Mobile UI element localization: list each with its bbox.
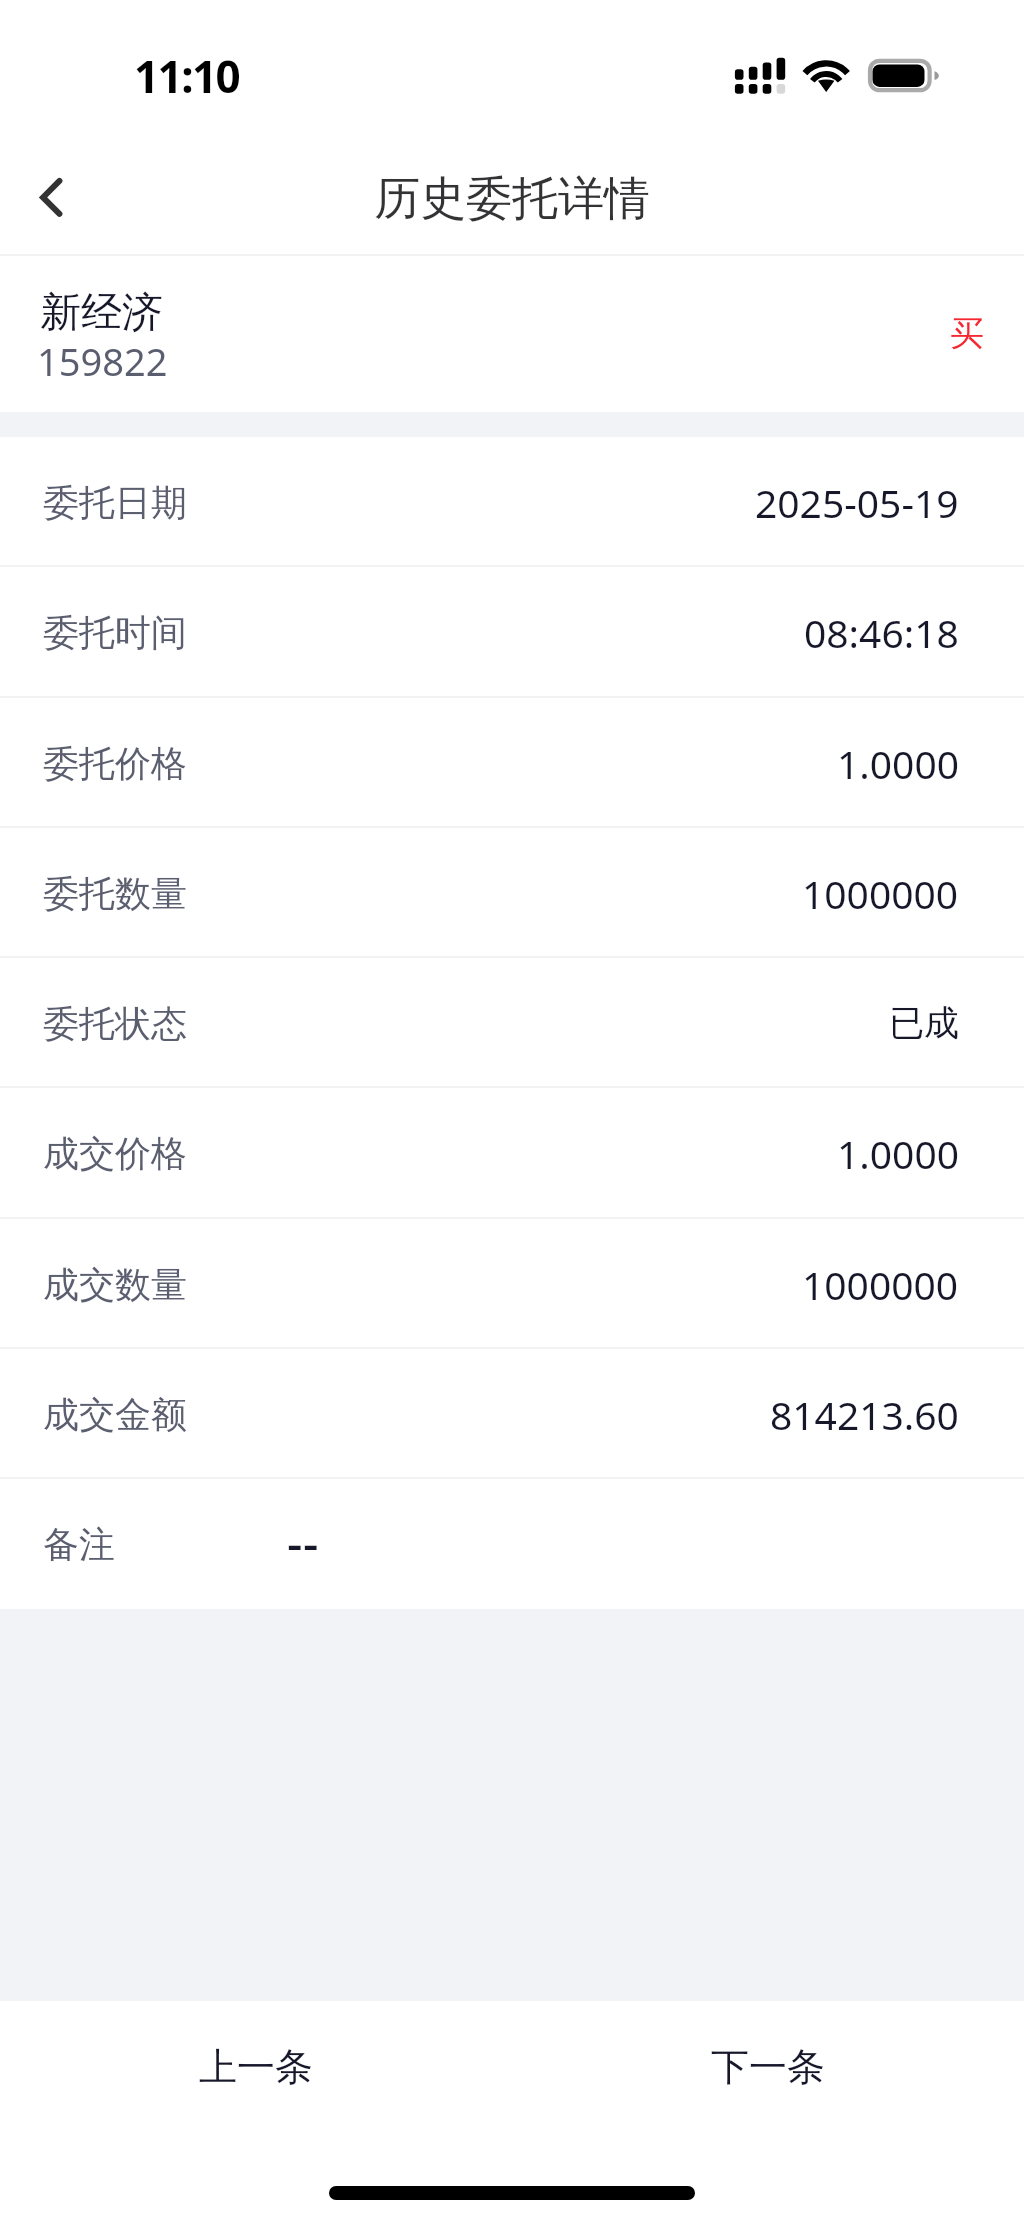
staticText: 1.0000 bbox=[837, 737, 959, 790]
button[interactable]: 成交数量 bbox=[0, 1219, 1024, 1349]
staticText: 成交金额 bbox=[43, 1392, 187, 1437]
button[interactable]: Back bbox=[0, 137, 112, 249]
staticText: 下一条 bbox=[711, 2043, 825, 2091]
staticText: 159822 bbox=[37, 335, 168, 387]
button[interactable]: 委托状态 bbox=[0, 958, 1024, 1088]
staticText: 委托价格 bbox=[43, 741, 187, 786]
staticText: 历史委托详情 bbox=[374, 170, 650, 228]
button[interactable]: 委托时间 bbox=[0, 567, 1024, 698]
staticText: 08:46:18 bbox=[804, 606, 959, 659]
staticText: 委托日期 bbox=[43, 480, 187, 525]
button[interactable]: 下一条 bbox=[512, 2001, 1024, 2131]
staticText: -- bbox=[287, 1510, 319, 1575]
staticText: 1000000 bbox=[802, 867, 959, 920]
button[interactable]: 委托日期 bbox=[0, 437, 1024, 567]
button[interactable]: 委托价格 bbox=[0, 698, 1024, 828]
staticText: 814213.60 bbox=[770, 1388, 959, 1441]
staticText: 委托时间 bbox=[43, 610, 187, 655]
staticText: 上一条 bbox=[199, 2043, 313, 2091]
staticText: 已成 bbox=[889, 1001, 959, 1045]
staticText: 2025-05-19 bbox=[755, 476, 959, 529]
staticText: 成交数量 bbox=[43, 1262, 187, 1307]
staticText: 1.0000 bbox=[837, 1127, 959, 1180]
staticText: 买 bbox=[950, 312, 984, 355]
button[interactable]: 委托数量 bbox=[0, 828, 1024, 958]
staticText: 成交价格 bbox=[43, 1131, 187, 1176]
staticText: 1000000 bbox=[802, 1258, 959, 1311]
button[interactable]: 成交金额 bbox=[0, 1349, 1024, 1479]
staticText: 新经济 bbox=[40, 287, 163, 339]
staticText: 委托状态 bbox=[43, 1001, 187, 1046]
staticText: 备注 bbox=[43, 1522, 115, 1567]
staticText: 11:10 bbox=[134, 46, 240, 106]
button[interactable]: 成交价格 bbox=[0, 1088, 1024, 1219]
staticText: 委托数量 bbox=[43, 871, 187, 916]
button[interactable]: 上一条 bbox=[0, 2001, 512, 2131]
button[interactable]: 备注 bbox=[0, 1479, 1024, 1609]
